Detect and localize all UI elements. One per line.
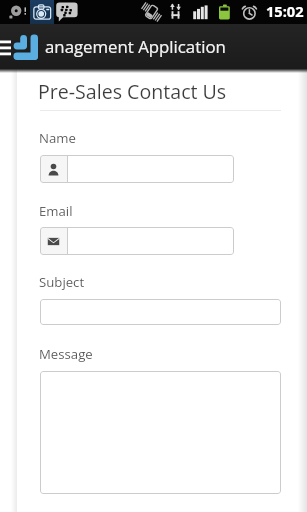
button[interactable]: Open navigation drawer (0, 38, 11, 56)
button[interactable]: Home (13, 34, 39, 61)
button[interactable]: Message (40, 371, 281, 494)
staticText: 15:02 (266, 1, 304, 21)
staticText: Email (39, 202, 73, 220)
button[interactable]: Email (40, 227, 234, 255)
button[interactable]: Name (40, 155, 234, 183)
button[interactable]: Subject (40, 299, 281, 325)
staticText: Pre-Sales Contact Us (38, 78, 227, 105)
staticText: Message (39, 345, 93, 363)
staticText: Subject (39, 273, 85, 291)
staticText: anagement Application (45, 35, 226, 58)
staticText: Name (39, 129, 76, 147)
